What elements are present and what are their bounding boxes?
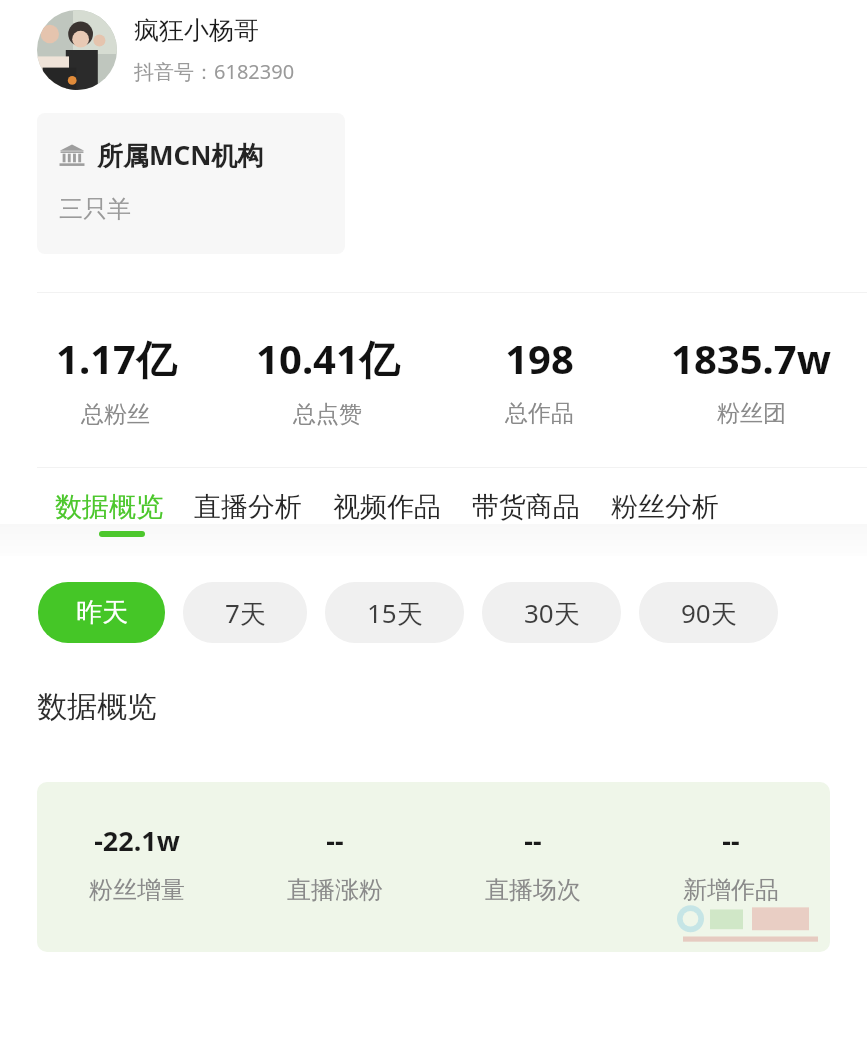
other: MCN机构	[59, 142, 85, 168]
button[interactable]: 10.41亿	[221, 331, 433, 429]
staticText: 直播分析	[194, 490, 302, 524]
button[interactable]: 30天	[482, 582, 621, 643]
staticText: 1.17亿	[56, 331, 176, 386]
button[interactable]: 90天	[639, 582, 778, 643]
button[interactable]: -22.1w	[37, 822, 236, 905]
button[interactable]: -22.1w	[37, 782, 830, 952]
button[interactable]: MCN机构	[37, 113, 345, 254]
staticText: 所属MCN机构	[97, 137, 264, 173]
button[interactable]: 昨天	[38, 582, 165, 643]
staticText: 新增作品	[683, 875, 779, 905]
button[interactable]: 数据概览	[55, 490, 163, 524]
staticText: 视频作品	[333, 490, 441, 524]
staticText: 粉丝增量	[89, 875, 185, 905]
staticText: --	[524, 822, 542, 859]
staticText: 10.41亿	[256, 331, 399, 386]
staticText: 30天	[524, 595, 580, 631]
button[interactable]: 198	[433, 331, 645, 428]
button[interactable]: 15天	[325, 582, 464, 643]
staticText: 粉丝团	[717, 399, 786, 428]
staticText: 7天	[225, 595, 266, 631]
button[interactable]: 直播分析	[194, 490, 302, 524]
staticText: --	[326, 822, 344, 859]
staticText: 直播场次	[485, 875, 581, 905]
staticText: --	[722, 822, 740, 859]
staticText: 1835.7w	[671, 331, 831, 385]
staticText: 总粉丝	[81, 400, 150, 429]
staticText: 198	[505, 331, 574, 385]
button[interactable]: 头像	[37, 10, 847, 90]
button[interactable]: 1835.7w	[645, 331, 857, 428]
button[interactable]: 带货商品	[472, 490, 580, 524]
staticText: 粉丝分析	[611, 490, 719, 524]
staticText: -22.1w	[94, 822, 180, 859]
staticText: 数据概览	[37, 688, 157, 726]
staticText: 带货商品	[472, 490, 580, 524]
staticText: 昨天	[76, 596, 128, 629]
staticText: 总作品	[505, 399, 574, 428]
staticText: 疯狂小杨哥	[134, 15, 259, 46]
button[interactable]: 粉丝分析	[611, 490, 719, 524]
button[interactable]: 头像	[37, 10, 117, 90]
button[interactable]: 1.17亿	[10, 331, 221, 429]
staticText: 直播涨粉	[287, 875, 383, 905]
button[interactable]: --	[236, 822, 434, 905]
staticText: 三只羊	[59, 194, 131, 224]
button[interactable]: 7天	[183, 582, 307, 643]
staticText: 15天	[367, 595, 423, 631]
button[interactable]: --	[632, 822, 830, 905]
staticText: 90天	[681, 595, 737, 631]
staticText: 总点赞	[293, 400, 362, 429]
staticText: 数据概览	[55, 490, 163, 524]
staticText: 抖音号：6182390	[134, 58, 295, 85]
button[interactable]: --	[434, 822, 632, 905]
button[interactable]: 视频作品	[333, 490, 441, 524]
